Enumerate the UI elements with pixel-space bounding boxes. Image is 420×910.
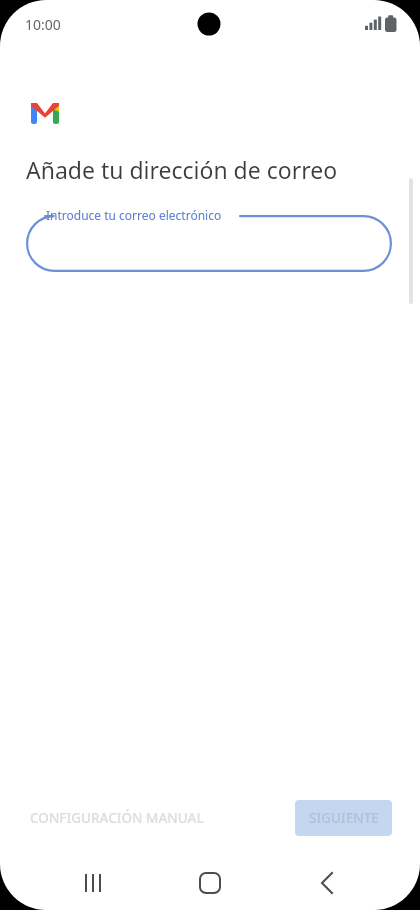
staticText: SIGUIENTE <box>309 809 379 827</box>
button[interactable]: SIGUIENTE <box>295 800 392 836</box>
staticText: Añade tu dirección de correo <box>26 154 338 185</box>
button[interactable]: CONFIGURACIÓN MANUAL <box>18 803 222 833</box>
button[interactable]: Home <box>187 860 233 906</box>
staticText: 10:00 <box>25 15 61 34</box>
button[interactable]: Introduce tu correo electrónico <box>26 215 392 272</box>
staticText: CONFIGURACIÓN MANUAL <box>30 809 204 827</box>
staticText: Introduce tu correo electrónico <box>46 207 222 223</box>
button[interactable]: Back <box>304 860 350 906</box>
button[interactable]: Recents <box>70 860 116 906</box>
